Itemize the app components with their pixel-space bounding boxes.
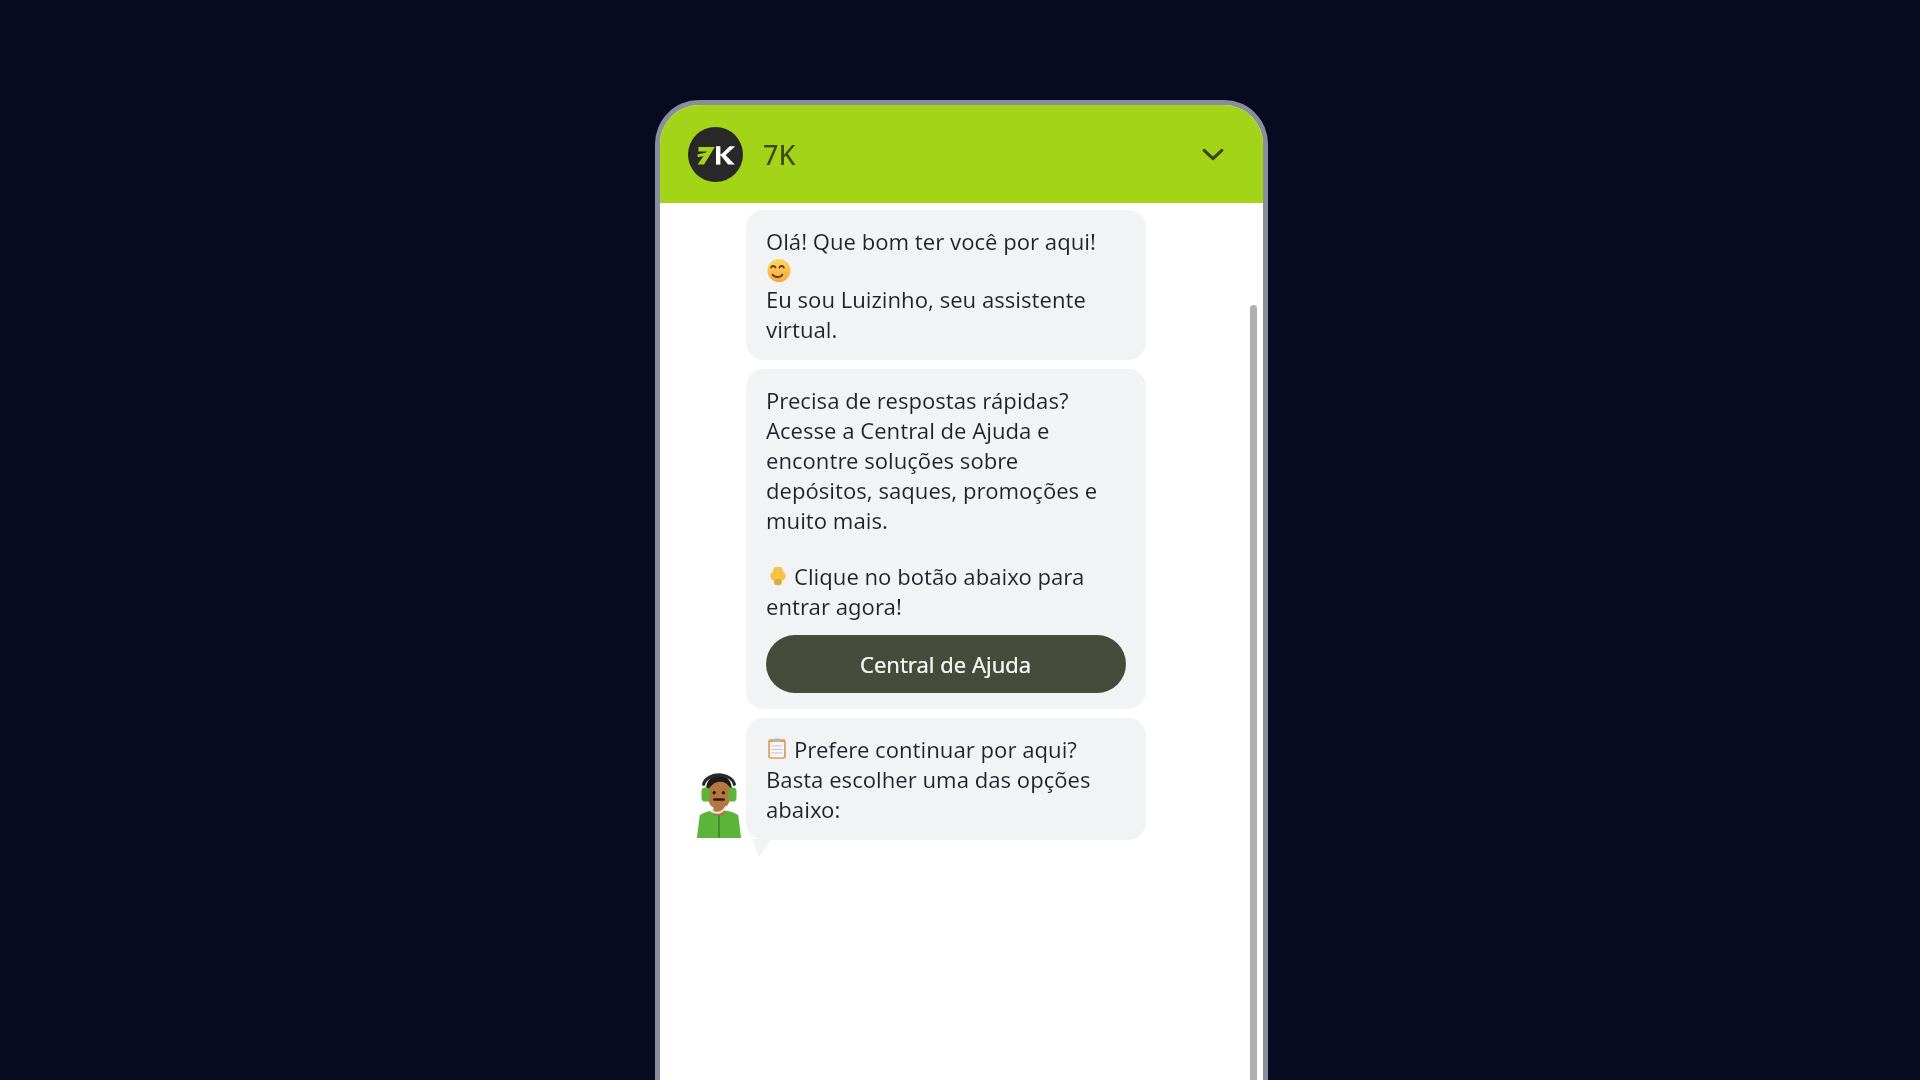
staticText: 7K: [763, 136, 796, 173]
staticText: Precisa de respostas rápidas?: [766, 385, 1069, 415]
staticText: muito mais.: [766, 505, 888, 535]
button[interactable]: Prefere continuar por aqui?: [746, 718, 1146, 840]
button[interactable]: Minimize chat: [1189, 130, 1237, 178]
staticText: Prefere continuar por aqui?: [794, 734, 1077, 764]
staticText: virtual.: [766, 314, 838, 344]
staticText: Eu sou Luizinho, seu assistente: [766, 284, 1086, 314]
button[interactable]: Precisa de respostas rápidas?: [746, 369, 1146, 709]
staticText: depósitos, saques, promoções e: [766, 475, 1098, 505]
staticText: Basta escolher uma das opções: [766, 764, 1091, 794]
staticText: Olá! Que bom ter você por aqui!: [766, 226, 1096, 256]
staticText: Acesse a Central de Ajuda e: [766, 415, 1050, 445]
button[interactable]: Central de Ajuda: [766, 635, 1126, 693]
staticText: Clique no botão abaixo para: [794, 561, 1085, 591]
staticText: Central de Ajuda: [860, 649, 1032, 679]
staticText: abaixo:: [766, 794, 841, 824]
staticText: entrar agora!: [766, 591, 902, 621]
staticText: encontre soluções sobre: [766, 445, 1019, 475]
button[interactable]: Olá! Que bom ter você por aqui!: [746, 210, 1146, 360]
